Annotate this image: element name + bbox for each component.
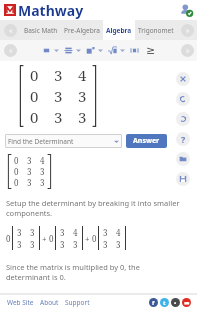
staticText: 0 xyxy=(6,233,11,244)
button[interactable]: Absolute value xyxy=(128,44,141,57)
button[interactable]: Previous tools xyxy=(4,44,17,57)
button[interactable]: Greater or equal xyxy=(145,43,157,58)
staticText: 0 xyxy=(30,107,39,127)
staticText: » xyxy=(186,26,190,36)
staticText: + xyxy=(42,233,47,244)
button[interactable]: Expand xyxy=(75,47,82,54)
button[interactable]: Clear xyxy=(176,72,190,86)
staticText: 4 xyxy=(40,155,45,166)
staticText: • xyxy=(174,299,177,307)
button[interactable]: Parentheses xyxy=(40,44,53,57)
button[interactable]: Save xyxy=(176,172,190,186)
staticText: 3 xyxy=(103,239,108,250)
staticText: 0 xyxy=(14,166,19,177)
staticText: Mathway xyxy=(18,1,84,20)
staticText: 4 xyxy=(73,227,78,238)
button[interactable]: Web Site xyxy=(4,298,37,307)
button[interactable]: YouTube xyxy=(182,298,191,307)
staticText: + xyxy=(85,233,90,244)
staticText: Setup the determinant by breaking it int… xyxy=(6,198,180,208)
button[interactable]: Support xyxy=(62,298,93,307)
button[interactable]: Fraction xyxy=(62,44,75,57)
button[interactable]: Folder xyxy=(176,152,190,166)
staticText: 4 xyxy=(116,227,121,238)
staticText: 3 xyxy=(60,239,65,250)
staticText: 3 xyxy=(54,107,63,127)
staticText: components. xyxy=(6,208,53,218)
button[interactable]: Algebra xyxy=(103,20,135,40)
staticText: determinant is 0. xyxy=(6,272,66,282)
button[interactable]: Facebook xyxy=(149,298,158,307)
staticText: 0 xyxy=(30,65,39,85)
staticText: Web Site xyxy=(7,298,34,307)
staticText: 3 xyxy=(60,227,65,238)
staticText: 3 xyxy=(40,177,45,188)
staticText: ? xyxy=(181,133,186,145)
staticText: 3 xyxy=(27,155,32,166)
staticText: Algebra xyxy=(106,26,132,35)
staticText: 0 xyxy=(49,233,54,244)
staticText: 3 xyxy=(40,166,45,177)
button[interactable]: Expand xyxy=(119,47,126,54)
staticText: 3 xyxy=(54,65,63,85)
button[interactable]: Answer xyxy=(126,134,167,148)
button[interactable]: About xyxy=(37,298,62,307)
staticText: 0 xyxy=(30,86,39,106)
staticText: About xyxy=(40,298,59,307)
staticText: 3 xyxy=(116,239,121,250)
staticText: t xyxy=(163,299,166,307)
button[interactable]: Expand xyxy=(53,47,60,54)
button[interactable]: Account xyxy=(179,3,193,17)
staticText: 3 xyxy=(78,86,87,106)
staticText: 3 xyxy=(17,239,22,250)
staticText: 3 xyxy=(30,239,35,250)
staticText: Pre-Algebra xyxy=(64,26,100,35)
staticText: Since the matrix is multiplied by 0, the xyxy=(6,262,140,272)
button[interactable]: Square root xyxy=(106,44,119,57)
button[interactable]: Pre-Algebra xyxy=(61,20,103,40)
button[interactable]: Find the Determinant xyxy=(5,134,122,148)
button[interactable]: Undo xyxy=(176,92,190,106)
staticText: 4 xyxy=(78,65,87,85)
button[interactable]: Twitter xyxy=(160,298,169,307)
staticText: 0 xyxy=(14,177,19,188)
staticText: Support xyxy=(65,298,90,307)
staticText: 0 xyxy=(92,233,97,244)
staticText: 3 xyxy=(78,107,87,127)
staticText: ≥ xyxy=(146,44,156,57)
button[interactable]: More tools xyxy=(181,44,194,57)
button[interactable]: Basic Math xyxy=(21,20,61,40)
staticText: « xyxy=(9,46,13,56)
staticText: « xyxy=(9,26,13,36)
staticText: Trigonomet xyxy=(138,26,174,35)
button[interactable]: Expand xyxy=(97,47,104,54)
staticText: f xyxy=(152,299,155,307)
staticText: 3 xyxy=(30,227,35,238)
staticText: 0 xyxy=(14,155,19,166)
staticText: 3 xyxy=(27,166,32,177)
button[interactable]: Redo xyxy=(176,112,190,126)
button[interactable]: Previous tabs xyxy=(4,24,17,37)
staticText: 3 xyxy=(73,239,78,250)
staticText: 3 xyxy=(17,227,22,238)
staticText: Answer xyxy=(133,136,160,146)
button[interactable]: Blog xyxy=(171,298,180,307)
button[interactable]: Next tabs xyxy=(181,24,194,37)
staticText: 3 xyxy=(27,177,32,188)
staticText: 3 xyxy=(103,227,108,238)
staticText: 3 xyxy=(54,86,63,106)
button[interactable]: Trigonomet xyxy=(135,20,177,40)
staticText: ▬ xyxy=(184,299,190,306)
button[interactable]: Help xyxy=(176,132,190,146)
button[interactable]: Exponent xyxy=(84,44,97,57)
staticText: Find the Determinant xyxy=(8,137,74,146)
staticText: Basic Math xyxy=(24,26,58,35)
staticText: » xyxy=(186,46,190,56)
